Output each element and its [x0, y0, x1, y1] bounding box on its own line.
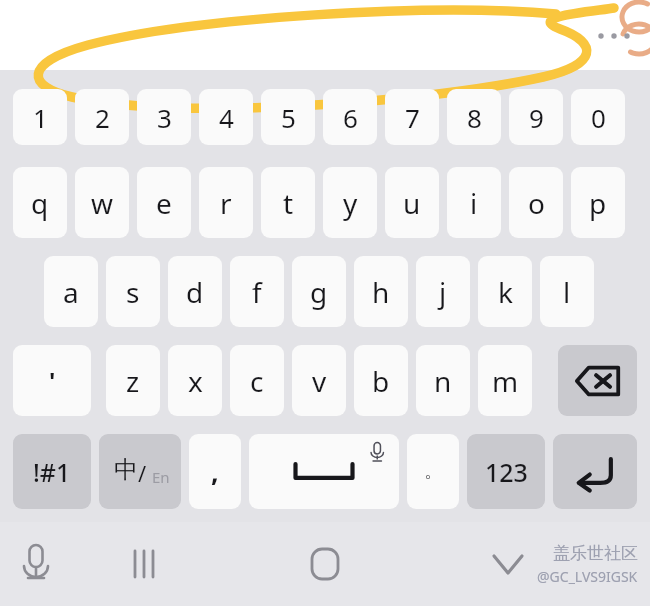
staticText: 0	[591, 100, 606, 135]
staticText: 3	[157, 100, 172, 135]
button[interactable]: Comma	[189, 434, 241, 509]
staticText: 123	[485, 455, 528, 489]
staticText: w	[91, 184, 114, 222]
button[interactable]: l	[540, 256, 594, 327]
button[interactable]: f	[230, 256, 284, 327]
staticText: p	[589, 184, 607, 222]
staticText: f	[252, 273, 262, 311]
button[interactable]: e	[137, 167, 191, 238]
staticText: 2	[95, 100, 110, 135]
staticText: '	[49, 364, 56, 397]
button[interactable]: 1	[13, 89, 67, 145]
staticText: 盖乐世社区	[553, 543, 638, 564]
button[interactable]: 123	[467, 434, 545, 509]
button[interactable]: n	[416, 345, 470, 416]
button[interactable]: 2	[75, 89, 129, 145]
button[interactable]: More options	[594, 26, 630, 46]
button[interactable]: Period	[407, 434, 459, 509]
button[interactable]: m	[478, 345, 532, 416]
button[interactable]: d	[168, 256, 222, 327]
button[interactable]: k	[478, 256, 532, 327]
staticText: m	[492, 362, 519, 400]
button[interactable]: b	[354, 345, 408, 416]
button[interactable]: z	[106, 345, 160, 416]
staticText: 6	[343, 100, 358, 135]
staticText: c	[250, 362, 264, 400]
button[interactable]: a	[44, 256, 98, 327]
button[interactable]: Voice input	[10, 540, 62, 588]
staticText: u	[403, 184, 421, 222]
staticText: ,	[211, 453, 219, 490]
button[interactable]: 3	[137, 89, 191, 145]
staticText: j	[439, 273, 447, 311]
staticText: z	[126, 362, 140, 400]
staticText: !#1	[33, 455, 71, 489]
staticText: o	[528, 184, 545, 222]
button[interactable]: Apostrophe	[13, 345, 91, 416]
button[interactable]: s	[106, 256, 160, 327]
button[interactable]: 5	[261, 89, 315, 145]
staticText: v	[312, 362, 327, 400]
staticText: q	[31, 184, 49, 222]
button[interactable]: i	[447, 167, 501, 238]
staticText: 7	[405, 100, 420, 135]
staticText: i	[470, 184, 478, 222]
button[interactable]: q	[13, 167, 67, 238]
staticText: 4	[219, 100, 234, 135]
button[interactable]: o	[509, 167, 563, 238]
button[interactable]: u	[385, 167, 439, 238]
staticText: t	[283, 184, 294, 222]
staticText: /	[138, 458, 147, 488]
staticText: 8	[467, 100, 482, 135]
button[interactable]: j	[416, 256, 470, 327]
button[interactable]: 0	[571, 89, 625, 145]
button[interactable]: g	[292, 256, 346, 327]
staticText: a	[63, 273, 79, 311]
button[interactable]: h	[354, 256, 408, 327]
staticText: d	[186, 273, 204, 311]
button[interactable]: 8	[447, 89, 501, 145]
staticText: l	[563, 273, 571, 311]
staticText: e	[156, 184, 172, 222]
staticText: y	[343, 184, 358, 222]
staticText: g	[310, 273, 328, 311]
staticText: h	[372, 273, 390, 311]
button[interactable]: Switch Chinese English	[99, 434, 181, 509]
button[interactable]: 9	[509, 89, 563, 145]
staticText: En	[152, 467, 170, 487]
button[interactable]: !#1	[13, 434, 91, 509]
button[interactable]: Home	[299, 540, 351, 588]
button[interactable]: Recent apps	[118, 540, 170, 588]
button[interactable]: y	[323, 167, 377, 238]
staticText: r	[220, 184, 232, 222]
button[interactable]: x	[168, 345, 222, 416]
button[interactable]: r	[199, 167, 253, 238]
button[interactable]: Hide keyboard	[482, 540, 534, 588]
button[interactable]: Enter	[553, 434, 637, 509]
staticText: 5	[281, 100, 296, 135]
staticText: n	[434, 362, 452, 400]
button[interactable]: c	[230, 345, 284, 416]
button[interactable]: p	[571, 167, 625, 238]
staticText: s	[126, 273, 140, 311]
button[interactable]: 7	[385, 89, 439, 145]
staticText: @GC_LVS9IGSK	[537, 567, 638, 586]
staticText: 1	[33, 100, 48, 135]
button[interactable]: v	[292, 345, 346, 416]
staticText: x	[188, 362, 203, 400]
button[interactable]: 4	[199, 89, 253, 145]
staticText: 9	[529, 100, 544, 135]
button[interactable]: t	[261, 167, 315, 238]
button[interactable]: Backspace	[558, 345, 637, 416]
button[interactable]: Space	[249, 434, 399, 509]
staticText: 。	[424, 460, 442, 483]
staticText: k	[498, 273, 513, 311]
staticText: 中	[114, 455, 138, 485]
staticText: b	[372, 362, 390, 400]
button[interactable]: 6	[323, 89, 377, 145]
button[interactable]: w	[75, 167, 129, 238]
